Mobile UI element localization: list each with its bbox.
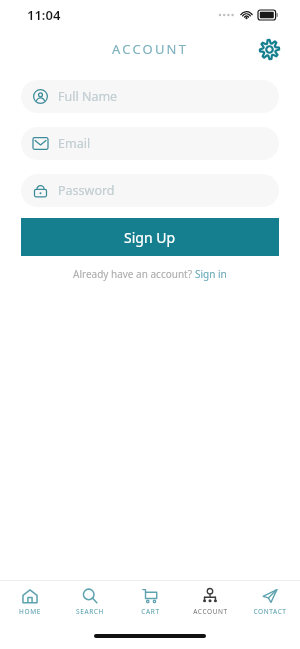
- button[interactable]: HOME: [0, 581, 60, 623]
- staticText: CONTACT: [253, 607, 287, 616]
- button[interactable]: CART: [120, 581, 180, 623]
- staticText: Email: [58, 135, 91, 152]
- staticText: Already have an account?: [73, 267, 195, 281]
- button[interactable]: Sign in: [195, 267, 227, 281]
- button[interactable]: Settings: [252, 32, 286, 66]
- button[interactable]: SEARCH: [60, 581, 120, 623]
- staticText: ACCOUNT: [112, 40, 189, 58]
- button[interactable]: ACCOUNT: [180, 581, 240, 623]
- staticText: Sign Up: [124, 228, 176, 247]
- staticText: HOME: [19, 607, 41, 616]
- button[interactable]: Sign Up: [21, 218, 279, 256]
- button[interactable]: Password: [21, 174, 279, 207]
- staticText: 11:04: [27, 6, 61, 24]
- staticText: Password: [58, 182, 115, 199]
- button[interactable]: CONTACT: [240, 581, 300, 623]
- staticText: Full Name: [58, 88, 118, 105]
- staticText: SEARCH: [76, 607, 104, 616]
- staticText: Sign in: [195, 267, 227, 281]
- staticText: CART: [141, 607, 160, 616]
- button[interactable]: Email: [21, 127, 279, 160]
- button[interactable]: Full Name: [21, 80, 279, 113]
- staticText: ACCOUNT: [193, 607, 228, 616]
